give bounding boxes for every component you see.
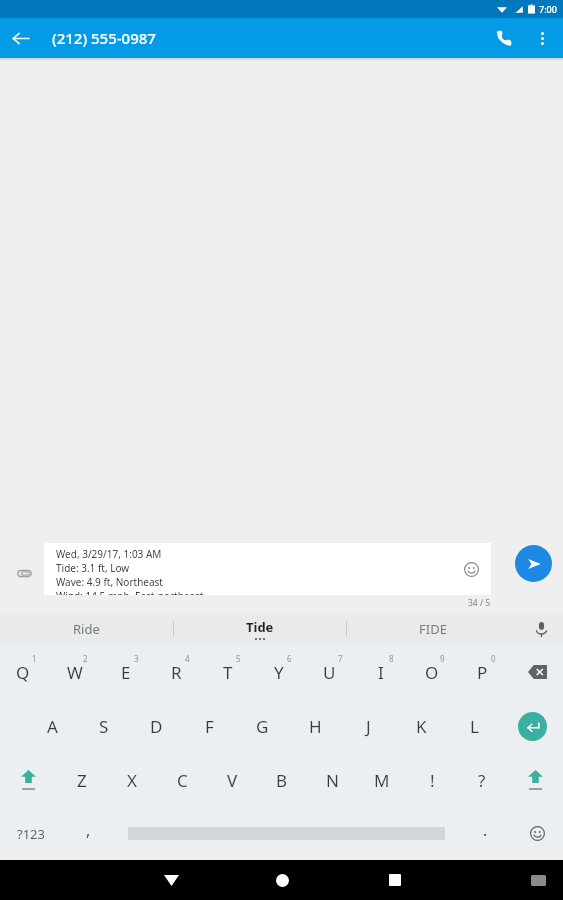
staticText: Q [16, 661, 30, 684]
button[interactable]: Emoji [459, 557, 483, 581]
button[interactable]: Recents [375, 860, 415, 900]
button[interactable]: Shift [507, 753, 563, 807]
staticText: 1 [32, 653, 37, 664]
staticText: I [378, 661, 384, 684]
button[interactable]: Back [151, 860, 191, 900]
button[interactable]: N [307, 753, 357, 807]
button[interactable]: B [257, 753, 307, 807]
staticText: G [256, 715, 269, 738]
button[interactable]: ?123 [0, 807, 62, 860]
button[interactable]: Home [262, 860, 302, 900]
staticText: H [309, 715, 322, 738]
staticText: , [86, 819, 91, 841]
button[interactable]: Wed, 3/29/17, 1:03 AM [44, 543, 491, 595]
staticText: 3 [134, 653, 139, 664]
button[interactable]: . [459, 807, 511, 860]
button[interactable]: J [342, 699, 395, 753]
staticText: B [276, 769, 288, 792]
staticText: 5 [236, 653, 241, 664]
button[interactable]: F [183, 699, 236, 753]
staticText: 8 [389, 653, 394, 664]
button[interactable]: S [78, 699, 130, 753]
button[interactable]: A [26, 699, 78, 753]
button[interactable]: C [157, 753, 207, 807]
button[interactable]: Enter [501, 699, 563, 753]
button[interactable]: Y [256, 645, 307, 699]
staticText: ? [478, 769, 486, 792]
button[interactable]: ? [457, 753, 507, 807]
staticText: FIDE [419, 620, 447, 638]
button[interactable]: Voice input [519, 613, 563, 645]
button[interactable]: Back [0, 18, 40, 58]
button[interactable]: K [395, 699, 448, 753]
staticText: M [374, 769, 390, 792]
button[interactable]: Q [0, 645, 52, 699]
staticText: 9 [440, 653, 445, 664]
staticText: O [425, 661, 439, 684]
staticText: 7 [338, 653, 343, 664]
button[interactable]: , [62, 807, 114, 860]
button[interactable]: More options [525, 21, 559, 55]
staticText: (212) 555-0987 [52, 28, 156, 48]
button[interactable]: Call [483, 18, 525, 58]
staticText: A [47, 715, 58, 738]
button[interactable]: T [205, 645, 256, 699]
staticText: 7:00 [539, 3, 557, 15]
staticText: 4 [185, 653, 190, 664]
button[interactable]: O [409, 645, 460, 699]
button[interactable]: FIDE [347, 613, 519, 645]
button[interactable]: X [107, 753, 157, 807]
button[interactable]: Ride [0, 613, 173, 645]
button[interactable]: H [289, 699, 342, 753]
staticText: ! [430, 769, 435, 792]
button[interactable]: L [448, 699, 501, 753]
staticText: ?123 [17, 825, 45, 843]
button[interactable]: Space [114, 807, 459, 860]
button[interactable]: P [460, 645, 511, 699]
staticText: Tide: 3.1 ft, Low [56, 561, 130, 575]
staticText: 34 / 5 [468, 597, 491, 609]
staticText: Y [274, 661, 284, 684]
button[interactable]: Emoji keyboard [511, 807, 563, 860]
button[interactable]: I [358, 645, 409, 699]
staticText: 0 [491, 653, 496, 664]
staticText: Wave: 4.9 ft, Northeast [56, 575, 163, 589]
staticText: U [323, 661, 336, 684]
staticText: N [326, 769, 339, 792]
button[interactable]: M [357, 753, 407, 807]
button[interactable]: Z [56, 753, 107, 807]
staticText: D [150, 715, 163, 738]
button[interactable]: R [154, 645, 205, 699]
button[interactable]: W [52, 645, 103, 699]
staticText: W [67, 661, 83, 684]
button[interactable]: ! [407, 753, 457, 807]
staticText: T [223, 661, 233, 684]
staticText: C [177, 769, 188, 792]
staticText: Wind: 14.5 mph, East-northeast [56, 589, 204, 595]
button[interactable]: U [307, 645, 358, 699]
button[interactable]: V [207, 753, 257, 807]
button[interactable]: Send [515, 545, 552, 582]
staticText: Tide [246, 618, 274, 636]
button[interactable]: Switch keyboard [521, 863, 555, 897]
staticText: J [366, 715, 371, 738]
staticText: P [477, 661, 488, 684]
staticText: S [99, 715, 109, 738]
staticText: K [416, 715, 427, 738]
button[interactable]: Shift [0, 753, 56, 807]
staticText: Wed, 3/29/17, 1:03 AM [56, 547, 162, 561]
button[interactable]: Tide [174, 613, 346, 645]
button[interactable]: D [130, 699, 183, 753]
button[interactable]: E [103, 645, 154, 699]
staticText: V [227, 769, 238, 792]
staticText: Ride [73, 620, 100, 638]
staticText: L [470, 715, 479, 738]
button[interactable]: Backspace [511, 645, 563, 699]
button[interactable]: G [236, 699, 289, 753]
staticText: X [127, 769, 137, 792]
staticText: 2 [83, 653, 88, 664]
staticText: . [483, 819, 488, 841]
button[interactable]: Attach [8, 557, 40, 589]
staticText: F [205, 715, 214, 738]
staticText: R [171, 661, 182, 684]
